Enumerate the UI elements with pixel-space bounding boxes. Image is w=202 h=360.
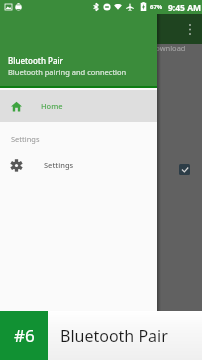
staticText: Home [41, 101, 63, 111]
staticText: Bluetooth Pair [8, 55, 63, 66]
staticText: 9:45 AM [168, 2, 202, 14]
staticText: Settings [11, 134, 40, 144]
staticText: #6 [14, 324, 35, 347]
staticText: 67% [150, 3, 163, 11]
button[interactable]: Home [0, 90, 157, 122]
button[interactable]: More options [183, 22, 197, 36]
staticText: Start Download [131, 43, 186, 53]
staticText: Bluetooth pairing and connection [8, 67, 127, 77]
staticText: Settings [44, 160, 74, 170]
staticText: Bluetooth Pair [60, 325, 168, 347]
button[interactable]: Settings [0, 154, 157, 176]
button[interactable]: Search [100, 158, 190, 180]
